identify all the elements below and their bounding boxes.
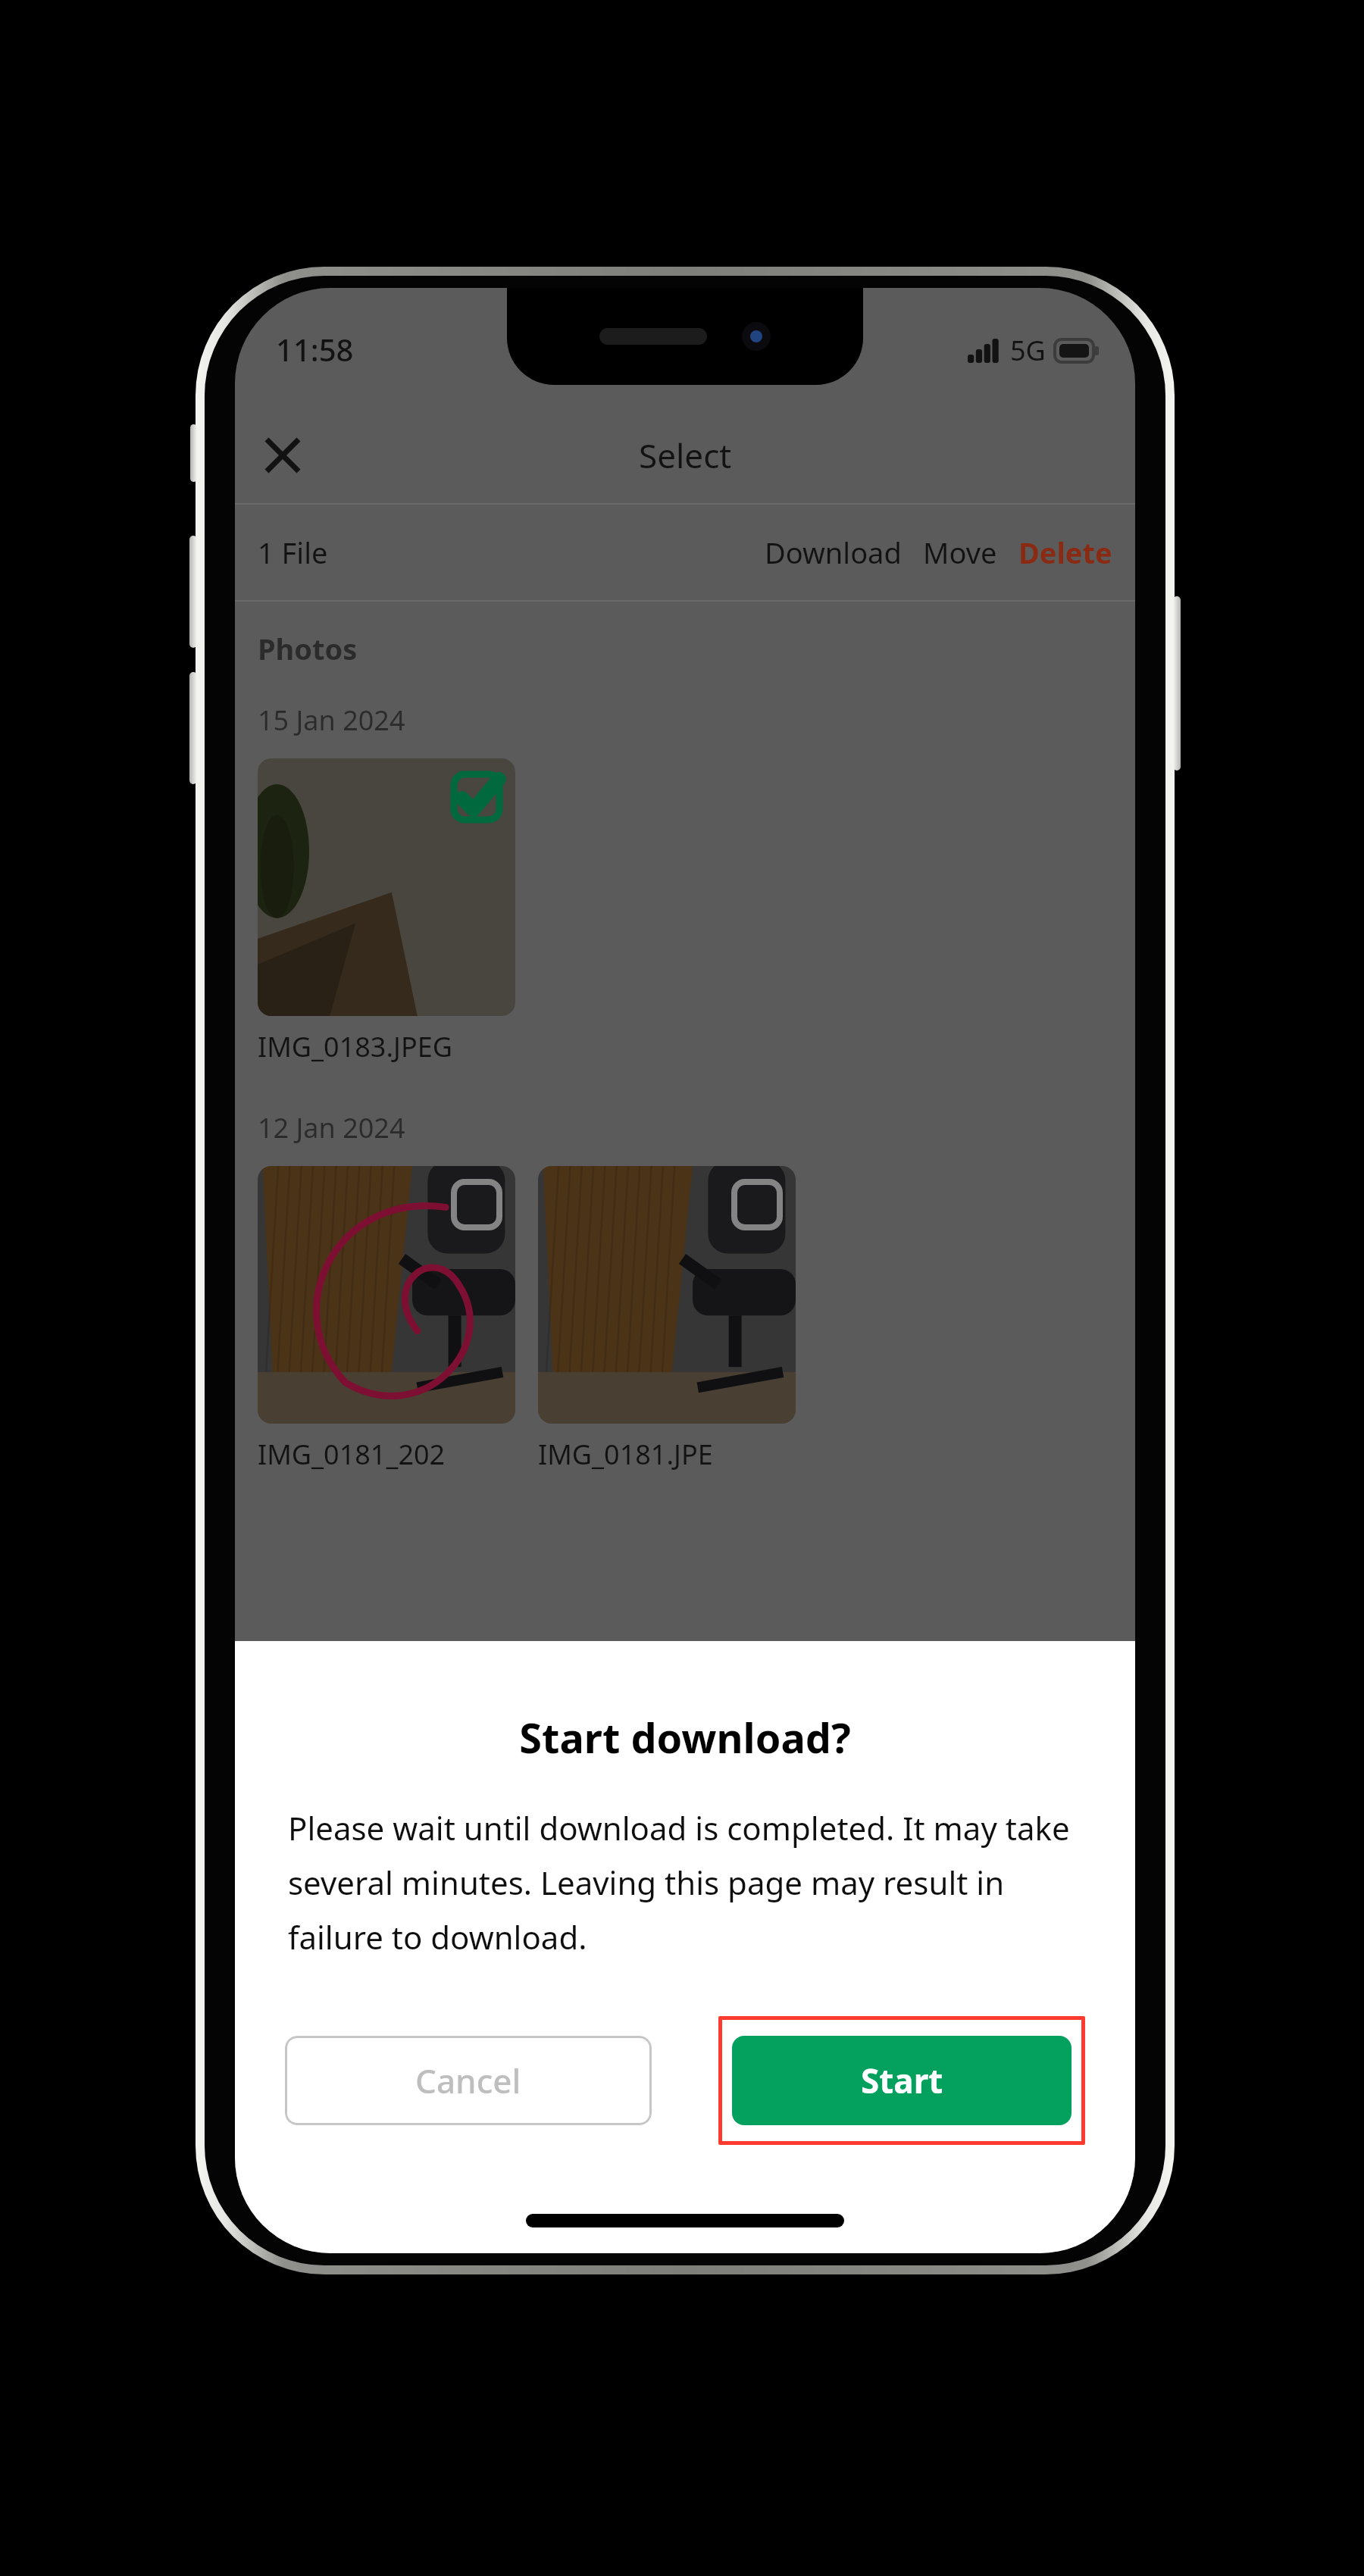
staticText: 15 Jan 2024 — [258, 702, 405, 739]
staticText: Photos — [258, 629, 358, 668]
button[interactable] — [258, 1166, 515, 1424]
staticText: Please wait until download is completed.… — [288, 1806, 1082, 1959]
staticText: 12 Jan 2024 — [258, 1109, 405, 1146]
button[interactable] — [258, 758, 515, 1016]
staticText: IMG_0181.JPE — [538, 1436, 713, 1473]
button[interactable]: Start — [732, 2036, 1071, 2125]
staticText: 1 File — [258, 533, 328, 572]
staticText: IMG_0181_202 — [258, 1436, 446, 1473]
staticText: Cancel — [415, 2058, 521, 2103]
button[interactable]: Cancel — [285, 2036, 652, 2125]
button[interactable] — [538, 1166, 796, 1424]
staticText: 5G — [1010, 332, 1046, 369]
button[interactable]: Move — [912, 522, 1008, 583]
staticText: Start download? — [235, 1709, 1135, 1765]
button[interactable]: Download — [754, 522, 912, 583]
staticText: IMG_0183.JPEG — [258, 1028, 452, 1065]
staticText: Select — [639, 433, 732, 478]
button[interactable]: Delete — [1008, 522, 1123, 583]
staticText: Start — [861, 2058, 943, 2103]
button[interactable]: Close — [252, 424, 314, 486]
staticText: 11:58 — [276, 329, 354, 370]
